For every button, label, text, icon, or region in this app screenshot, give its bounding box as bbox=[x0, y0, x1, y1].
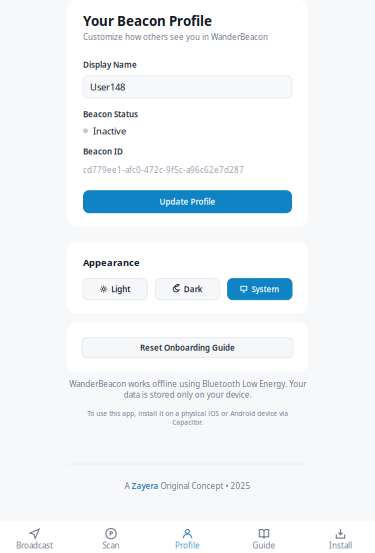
staticText: Customize how others see you in WanderBe… bbox=[83, 32, 268, 42]
button[interactable]: System bbox=[228, 279, 292, 300]
button[interactable]: Scan bbox=[74, 521, 148, 553]
button[interactable]: Dark bbox=[155, 279, 220, 300]
staticText: Guide bbox=[252, 540, 275, 551]
button[interactable]: Reset Onboarding Guide bbox=[67, 323, 308, 373]
staticText: Inactive bbox=[93, 125, 126, 137]
staticText: To use this app, install it on a physica… bbox=[87, 409, 288, 427]
button[interactable]: Install bbox=[303, 521, 375, 553]
staticText: Original Concept • 2025 bbox=[158, 481, 250, 491]
staticText: Dark bbox=[184, 284, 203, 294]
staticText: Your Beacon Profile bbox=[83, 12, 212, 30]
staticText: Profile bbox=[175, 540, 200, 551]
button[interactable]: Update Profile bbox=[83, 190, 292, 213]
staticText: System bbox=[251, 284, 279, 294]
staticText: cd779ee1-afc0-472c-9f5c-a96c62e7d287 bbox=[83, 165, 244, 175]
staticText: Install bbox=[329, 540, 352, 551]
staticText: Beacon ID bbox=[83, 146, 123, 157]
button[interactable]: Broadcast bbox=[0, 521, 71, 553]
staticText: Update Profile bbox=[159, 196, 215, 207]
staticText: Display Name bbox=[83, 59, 137, 70]
staticText: A bbox=[124, 481, 131, 491]
staticText: Reset Onboarding Guide bbox=[140, 342, 235, 353]
staticText: Beacon Status bbox=[83, 109, 138, 120]
button[interactable]: Light bbox=[83, 279, 147, 300]
staticText: Appearance bbox=[83, 256, 140, 269]
staticText: Broadcast bbox=[16, 540, 53, 551]
button[interactable]: Guide bbox=[227, 521, 301, 553]
button[interactable]: Profile bbox=[150, 521, 224, 553]
staticText: User148 bbox=[90, 81, 125, 93]
staticText: Light bbox=[111, 284, 130, 294]
staticText: Scan bbox=[102, 540, 119, 551]
staticText: Zayera bbox=[131, 481, 158, 491]
staticText: WanderBeacon works offline using Bluetoo… bbox=[69, 379, 306, 400]
